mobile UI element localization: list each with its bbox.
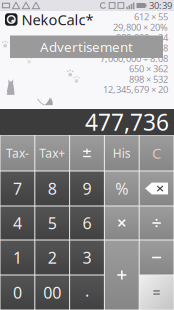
staticText: 9 [82, 178, 91, 199]
staticText: 12,345,679 × 20 [103, 83, 168, 96]
button[interactable]: Tax+ [35, 135, 69, 170]
button[interactable]: Backspace [140, 171, 173, 205]
button[interactable]: Divide [140, 206, 173, 239]
button[interactable]: 5 [35, 206, 69, 239]
staticText: Tax+ [39, 145, 65, 161]
staticText: 980,000 ÷ 24 [116, 31, 168, 44]
staticText: NekoCalc* [21, 10, 93, 29]
button[interactable]: 0 [0, 275, 34, 309]
button[interactable]: 00 [35, 275, 69, 309]
staticText: 2 [48, 247, 57, 268]
staticText: 4 [13, 212, 22, 234]
button[interactable]: Advertisement [10, 35, 163, 58]
staticText: 00 [43, 282, 61, 303]
button[interactable]: Subtract [140, 240, 173, 274]
button[interactable]: His [105, 135, 139, 170]
button[interactable]: Multiply [105, 206, 139, 239]
staticText: 5 [48, 212, 57, 234]
button[interactable]: 9 [70, 171, 104, 205]
button[interactable]: Plus minus [70, 135, 104, 170]
staticText: 8 [48, 178, 57, 199]
button[interactable]: 2 [35, 240, 69, 274]
staticText: Tax- [6, 145, 29, 161]
staticText: 7,000,000 ÷ 8.08 [100, 52, 168, 64]
staticText: Advertisement [40, 38, 133, 56]
staticText: 30:39 [149, 0, 172, 12]
button[interactable]: 6 [70, 206, 104, 239]
button[interactable]: 8 [35, 171, 69, 205]
staticText: 29,800 × 20% [113, 21, 168, 33]
staticText: 0 [13, 282, 22, 303]
staticText: 477,736 [85, 107, 169, 137]
staticText: 1 [13, 247, 22, 268]
staticText: 898 × 532 [129, 73, 168, 85]
button[interactable]: 7 [0, 171, 34, 205]
button[interactable]: Tax- [0, 135, 34, 170]
staticText: 3 [82, 247, 91, 268]
button[interactable]: 3 [70, 240, 104, 274]
button[interactable]: Add [105, 240, 139, 309]
button[interactable]: C [140, 135, 173, 170]
button[interactable]: . [70, 275, 104, 309]
staticText: His [113, 145, 131, 161]
staticText: % [115, 178, 128, 199]
button[interactable]: Equals [140, 275, 173, 309]
staticText: 7 [13, 178, 22, 199]
staticText: 7,000 × 38 [126, 42, 168, 54]
staticText: . [85, 280, 89, 301]
button[interactable]: 1 [0, 240, 34, 274]
staticText: 612 × 55 [134, 10, 168, 23]
button[interactable]: % [105, 171, 139, 205]
staticText: C [152, 143, 161, 163]
button[interactable]: 4 [0, 206, 34, 239]
staticText: 6 [82, 212, 91, 234]
staticText: 650 × 362 [129, 62, 168, 75]
